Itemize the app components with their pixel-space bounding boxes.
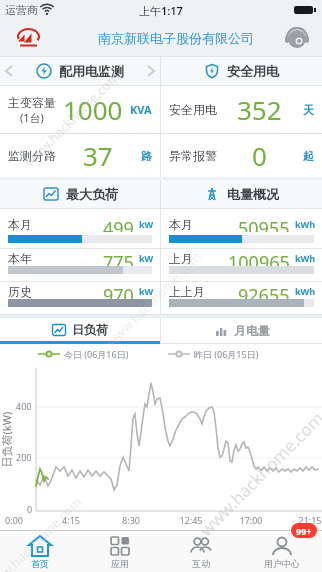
- button[interactable]: 首页: [0, 531, 80, 572]
- staticText: 应用: [111, 558, 129, 569]
- staticText: www.hackhome.com: [20, 67, 124, 171]
- button[interactable]: 月电量: [161, 318, 322, 344]
- button[interactable]: 本月: [161, 209, 322, 249]
- staticText: 上上月: [169, 284, 205, 299]
- staticText: 最大负荷: [66, 186, 118, 202]
- staticText: (1台): [20, 110, 44, 125]
- button[interactable]: 异常报警: [161, 134, 322, 177]
- button[interactable]: 监测分路: [0, 134, 160, 177]
- staticText: kW: [139, 218, 154, 230]
- staticText: 92655: [238, 283, 290, 299]
- staticText: 37: [83, 138, 113, 173]
- staticText: 日负荷: [72, 322, 108, 337]
- staticText: 配用电监测: [59, 63, 124, 79]
- staticText: 起: [303, 149, 314, 163]
- staticText: 499: [103, 216, 134, 232]
- staticText: 12:45: [177, 514, 205, 526]
- staticText: 400: [16, 400, 32, 412]
- staticText: 安全用电: [169, 102, 217, 117]
- staticText: 100965: [228, 250, 290, 266]
- staticText: kW: [139, 252, 154, 264]
- staticText: www.hackhome.com: [102, 247, 206, 351]
- staticText: 本年: [8, 251, 32, 266]
- button[interactable]: 配用电监测: [0, 57, 160, 85]
- staticText: 0: [27, 503, 33, 515]
- staticText: kWh: [295, 285, 316, 297]
- staticText: 17:00: [237, 514, 265, 526]
- staticText: 352: [237, 92, 282, 127]
- staticText: 200: [16, 451, 32, 463]
- staticText: 天: [303, 103, 314, 117]
- staticText: 8:30: [117, 514, 145, 526]
- button[interactable]: 电量概况: [161, 180, 322, 208]
- staticText: KVA: [130, 102, 152, 117]
- staticText: www.hackhome.com: [194, 406, 322, 541]
- staticText: 970: [103, 283, 134, 299]
- button[interactable]: 互动: [160, 531, 241, 572]
- staticText: kW: [139, 285, 154, 297]
- button[interactable]: 安全用电: [161, 57, 322, 85]
- staticText: www.hackhome.com: [0, 492, 86, 572]
- staticText: 21:15: [296, 514, 322, 526]
- staticText: 互动: [192, 558, 210, 569]
- staticText: 首页: [31, 558, 49, 569]
- staticText: 0:00: [0, 514, 28, 526]
- button[interactable]: 主变容量: [0, 86, 160, 133]
- button[interactable]: 本月: [0, 209, 160, 249]
- staticText: 50955: [238, 216, 290, 232]
- staticText: 电量概况: [227, 186, 279, 202]
- staticText: 上月: [169, 251, 193, 266]
- staticText: 安全用电: [227, 63, 279, 79]
- staticText: 1000: [63, 92, 123, 127]
- staticText: 历史: [8, 284, 32, 299]
- staticText: 日负荷(kW): [0, 411, 13, 467]
- staticText: 昨日 (06月15日): [194, 348, 259, 360]
- staticText: 月电量: [234, 323, 270, 338]
- button[interactable]: 用户中心: [241, 531, 322, 572]
- button[interactable]: 本年: [0, 249, 160, 282]
- staticText: 上午1:17: [139, 3, 183, 18]
- staticText: kWh: [295, 218, 316, 230]
- button[interactable]: 上月: [161, 249, 322, 282]
- button[interactable]: 日负荷: [0, 318, 160, 344]
- staticText: 南京新联电子股份有限公司: [98, 30, 254, 46]
- button[interactable]: 安全用电: [161, 86, 322, 133]
- staticText: 路: [141, 149, 152, 163]
- staticText: 本月: [169, 217, 193, 232]
- staticText: 4:15: [57, 514, 85, 526]
- staticText: 775: [103, 250, 134, 266]
- button[interactable]: 上上月: [161, 282, 322, 314]
- button[interactable]: 最大负荷: [0, 180, 160, 208]
- staticText: 0: [252, 138, 267, 173]
- staticText: 本月: [8, 217, 32, 232]
- staticText: 今日 (06月16日): [64, 348, 129, 360]
- staticText: 监测分路: [8, 148, 56, 163]
- button[interactable]: [284, 25, 310, 51]
- button[interactable]: 历史: [0, 282, 160, 314]
- staticText: kWh: [295, 252, 316, 264]
- staticText: 主变容量: [8, 95, 56, 110]
- staticText: 运营商: [5, 3, 38, 17]
- staticText: 用户中心: [264, 558, 300, 569]
- staticText: 异常报警: [169, 148, 217, 163]
- staticText: 99+: [296, 525, 312, 537]
- button[interactable]: 应用: [80, 531, 160, 572]
